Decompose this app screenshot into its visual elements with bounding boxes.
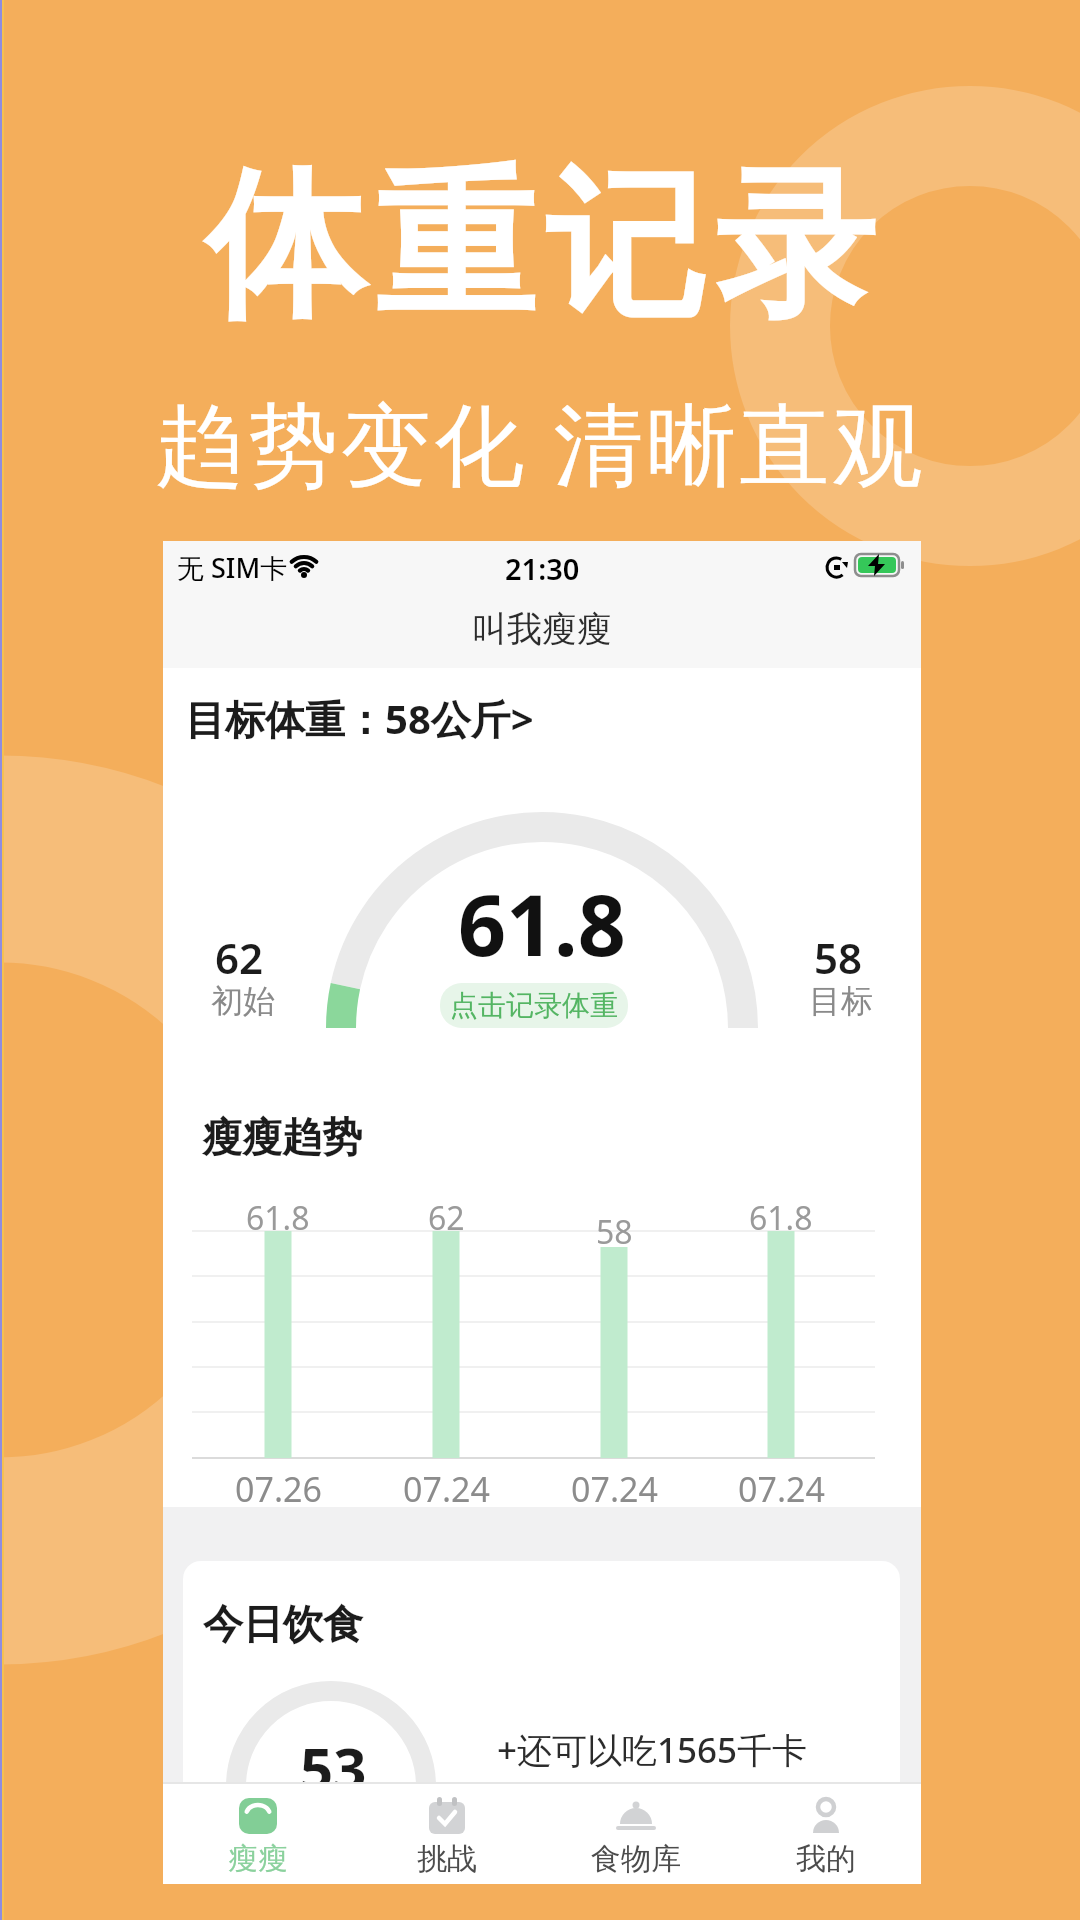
staticText: 53 bbox=[300, 1728, 367, 1782]
staticText: 61.8 bbox=[246, 1196, 310, 1240]
staticText: 今日饮食 bbox=[203, 1599, 363, 1649]
staticText: 21:30 bbox=[505, 549, 580, 588]
staticText: +还可以吃1565千卡 bbox=[497, 1726, 808, 1774]
staticText: 无 SIM卡 bbox=[177, 549, 288, 586]
staticText: 瘦瘦趋势 bbox=[202, 1112, 362, 1162]
staticText: 58 bbox=[596, 1210, 633, 1254]
staticText: 瘦瘦 bbox=[228, 1840, 288, 1878]
staticText: 叫我瘦瘦 bbox=[472, 607, 612, 651]
staticText: 07.24 bbox=[403, 1466, 490, 1512]
staticText: 食物库 bbox=[591, 1840, 681, 1878]
staticText: 61.8 bbox=[749, 1196, 813, 1240]
staticText: 07.24 bbox=[571, 1466, 658, 1512]
button[interactable]: 瘦瘦 bbox=[163, 1784, 352, 1884]
button[interactable]: 我的 bbox=[731, 1784, 921, 1884]
staticText: 58 bbox=[814, 929, 863, 986]
staticText: 挑战 bbox=[417, 1840, 477, 1878]
staticText: 体重记录 bbox=[200, 146, 880, 348]
staticText: 61.8 bbox=[458, 866, 626, 980]
button[interactable]: 目标体重：58公斤> bbox=[185, 691, 534, 746]
button[interactable]: 点击记录体重 bbox=[440, 983, 628, 1028]
button[interactable]: 食物库 bbox=[541, 1784, 731, 1884]
staticText: 07.26 bbox=[235, 1466, 322, 1512]
staticText: 目标 bbox=[809, 981, 873, 1021]
staticText: 我的 bbox=[796, 1840, 856, 1878]
button[interactable]: 挑战 bbox=[352, 1784, 541, 1884]
staticText: 62 bbox=[215, 929, 264, 986]
staticText: 初始 bbox=[211, 981, 275, 1021]
staticText: 07.24 bbox=[738, 1466, 825, 1512]
staticText: 62 bbox=[428, 1196, 465, 1240]
staticText: 点击记录体重 bbox=[450, 988, 618, 1023]
staticText: 趋势变化 清晰直观 bbox=[155, 381, 926, 504]
